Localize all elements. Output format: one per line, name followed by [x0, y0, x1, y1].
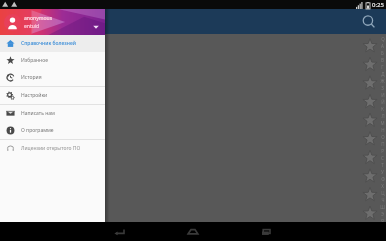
button[interactable]: anonymous	[0, 9, 105, 35]
staticText: Г	[381, 64, 384, 70]
staticText: Х	[381, 183, 384, 189]
staticText: А	[381, 43, 384, 49]
staticText: Э	[381, 211, 384, 217]
staticText: Я	[381, 218, 384, 222]
button[interactable]: Search	[360, 13, 378, 31]
button[interactable]: Настройки	[0, 87, 105, 104]
staticText: Настройки	[21, 92, 48, 99]
staticText: Избранное	[21, 57, 48, 64]
staticText: Q	[381, 36, 385, 42]
button[interactable]: Справочник болезней	[0, 35, 105, 52]
staticText: Б	[381, 50, 384, 56]
staticText: Ш	[380, 204, 385, 210]
staticText: У	[381, 169, 384, 175]
staticText: История	[21, 74, 42, 81]
staticText: anonymous	[24, 15, 53, 22]
staticText: Справочник болезней	[21, 40, 76, 47]
button[interactable]: История	[0, 69, 105, 86]
staticText: Т	[381, 162, 384, 168]
staticText: И	[381, 92, 385, 98]
staticText: Л	[381, 113, 385, 119]
staticText: entuid	[24, 23, 40, 30]
button[interactable]: О программе	[0, 122, 105, 139]
staticText: Написать нам	[21, 110, 55, 117]
staticText: В	[381, 57, 384, 63]
staticText: 0:25	[372, 1, 384, 9]
staticText: Ц	[381, 190, 385, 196]
button[interactable]: Home	[183, 222, 203, 241]
staticText: Лицензии открытого ПО	[21, 145, 81, 152]
staticText: Н	[381, 127, 385, 133]
button[interactable]: Избранное	[0, 52, 105, 69]
button[interactable]: Back	[110, 222, 130, 241]
staticText: М	[380, 120, 385, 126]
staticText: Р	[381, 148, 384, 154]
staticText: С	[381, 155, 384, 161]
staticText: Й	[381, 99, 385, 105]
button[interactable]: Switch account	[92, 23, 100, 31]
staticText: О	[381, 134, 385, 140]
staticText: О программе	[21, 127, 54, 134]
button[interactable]: Лицензии открытого ПО	[0, 140, 105, 157]
staticText: Ж	[380, 78, 385, 84]
staticText: П	[381, 141, 385, 147]
staticText: Д	[381, 71, 385, 77]
button[interactable]: Написать нам	[0, 105, 105, 122]
staticText: Ч	[381, 197, 385, 203]
staticText: Ф	[381, 176, 385, 182]
button[interactable]: Recent apps	[256, 222, 276, 241]
staticText: К	[381, 106, 384, 112]
staticText: З	[381, 85, 384, 91]
